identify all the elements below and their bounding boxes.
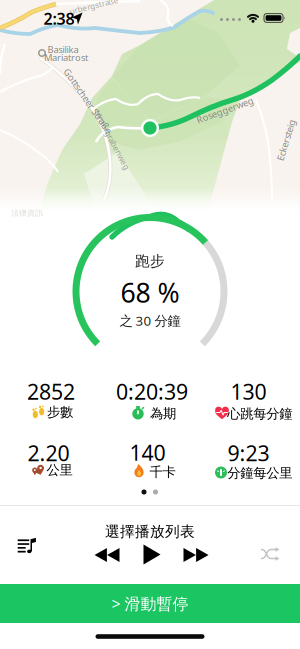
staticText: Gottscheer Straße	[49, 95, 126, 107]
staticText: 之 30 分鐘	[119, 312, 180, 329]
staticText: 跑步	[135, 252, 165, 270]
button[interactable]: Play	[143, 544, 160, 564]
staticText: 步數	[47, 404, 73, 420]
staticText: 68 %	[120, 275, 179, 310]
staticText: 130	[230, 377, 266, 406]
staticText: 為期	[150, 405, 176, 422]
staticText: Roseggerweg	[195, 104, 255, 116]
staticText: Eckersteig	[264, 134, 300, 146]
staticText: > 滑動暫停	[111, 593, 188, 614]
staticText: Mittergrabenweg	[79, 135, 145, 145]
staticText: 千卡	[149, 464, 175, 480]
staticText: 心跳每分鐘	[227, 406, 292, 422]
staticText: Basilika	[47, 43, 78, 56]
staticText: 選擇播放列表	[105, 522, 195, 540]
staticText: 0:20:39	[116, 377, 188, 406]
staticText: 9:23	[227, 439, 269, 467]
staticText: 140	[129, 438, 165, 467]
staticText: 2852	[27, 377, 75, 406]
button[interactable]: > 滑動暫停	[0, 584, 300, 623]
button[interactable]: Shuffle	[261, 547, 281, 561]
button[interactable]: Previous track	[94, 548, 119, 562]
staticText: Mariatrost	[44, 51, 88, 64]
staticText: 2.20	[28, 439, 70, 467]
staticText: 公里	[46, 462, 72, 478]
button[interactable]: Next track	[183, 548, 208, 562]
staticText: 法律資訊	[11, 208, 43, 218]
staticText: 分鐘每公里	[227, 465, 292, 481]
staticText: urbergstraße	[69, 0, 119, 11]
button[interactable]: Playlist	[18, 539, 38, 554]
staticText: 2:38	[43, 8, 74, 29]
